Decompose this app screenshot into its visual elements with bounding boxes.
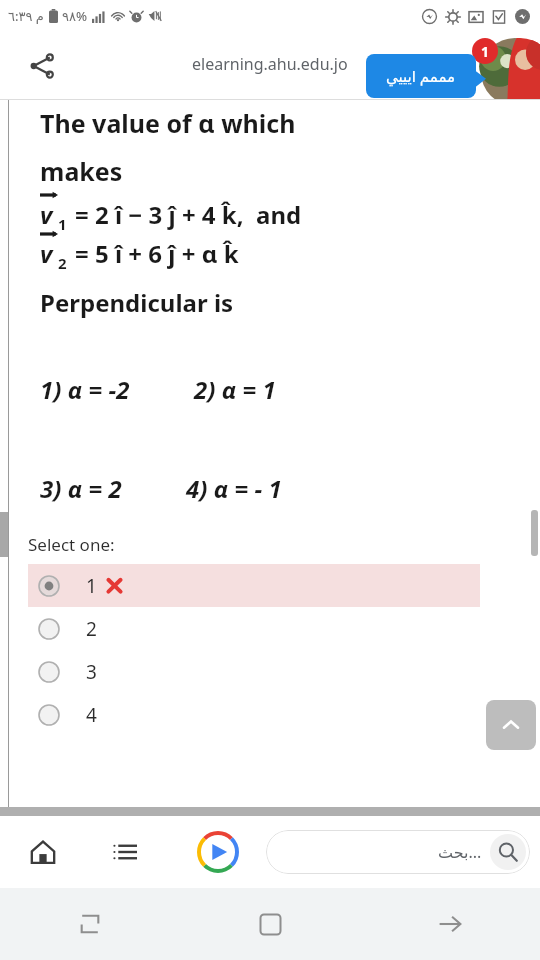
button[interactable]: Recent apps	[0, 888, 180, 960]
button[interactable]: Share	[20, 44, 64, 88]
staticText: م ٦:٣٩	[8, 7, 44, 25]
button[interactable]: 3	[28, 650, 480, 693]
staticText: 2	[86, 616, 97, 642]
staticText: بحث...	[438, 841, 482, 863]
staticText: Select one:	[28, 533, 115, 556]
staticText: 1	[58, 214, 67, 234]
staticText: مممم ايييي	[386, 66, 456, 86]
staticText: 3	[86, 659, 97, 685]
button[interactable]: 2	[28, 607, 480, 650]
staticText: elearning.ahu.edu.jo	[192, 53, 348, 75]
button[interactable]: 1	[28, 564, 480, 607]
button[interactable]: Home	[180, 888, 360, 960]
staticText: Perpendicular is	[40, 286, 234, 319]
staticText: v	[40, 237, 53, 270]
staticText: = 2 î − 3 ĵ + 4 k̂, and	[75, 198, 302, 231]
staticText: 1	[481, 42, 490, 61]
button[interactable]: Play	[194, 828, 242, 876]
button[interactable]: Scroll to top	[486, 700, 536, 750]
staticText: 4	[86, 702, 97, 728]
button[interactable]: Home	[20, 829, 66, 875]
button[interactable]: Back	[360, 888, 540, 960]
button[interactable]: Menu	[102, 829, 148, 875]
staticText: 3) α = 2	[40, 472, 122, 505]
staticText: ٩٨%	[62, 7, 88, 25]
button[interactable]: 4	[28, 693, 480, 736]
staticText: = 5 î + 6 ĵ + α k̂	[75, 237, 239, 270]
staticText: 2	[58, 253, 67, 273]
button[interactable]: بحث...	[266, 830, 530, 874]
staticText: 4) α = − 1	[186, 472, 282, 505]
staticText: 1	[86, 573, 97, 599]
staticText: The value of α which	[40, 106, 296, 140]
staticText: 2) α = 1	[194, 373, 276, 406]
staticText: 1) α = −2	[40, 373, 130, 406]
staticText: makes	[40, 154, 123, 188]
button[interactable]: Profile	[476, 38, 540, 106]
staticText: v	[40, 198, 53, 231]
